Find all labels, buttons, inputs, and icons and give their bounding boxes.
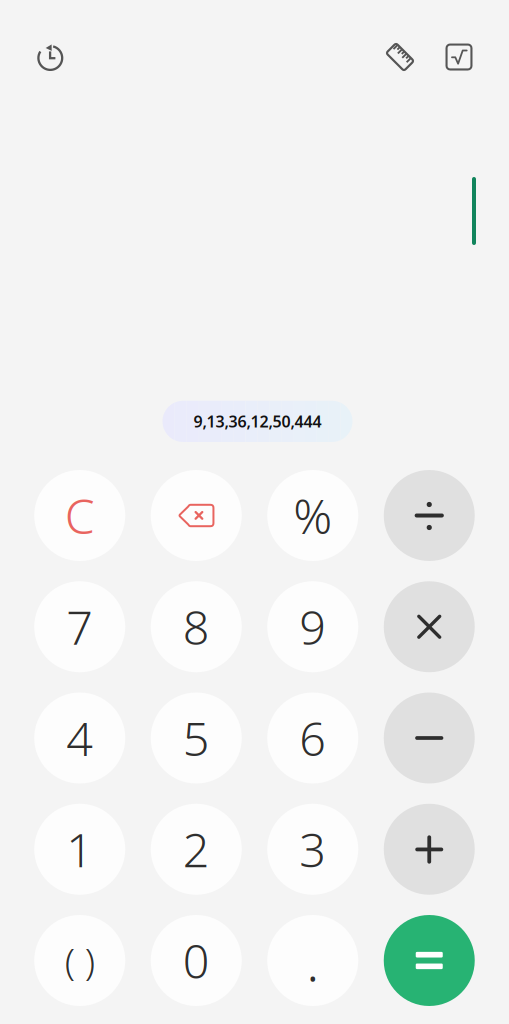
button[interactable]: . bbox=[267, 915, 358, 1006]
button[interactable]: 5 bbox=[151, 692, 242, 783]
button[interactable]: 7 bbox=[34, 581, 125, 672]
staticText: 9 bbox=[299, 596, 326, 658]
staticText: 6 bbox=[299, 707, 326, 769]
button[interactable]: 4 bbox=[34, 692, 125, 783]
button[interactable]: Equals bbox=[384, 915, 475, 1006]
button[interactable]: History bbox=[27, 34, 73, 80]
staticText: C bbox=[65, 484, 95, 547]
staticText: 8 bbox=[183, 596, 210, 658]
button[interactable]: Unit converter bbox=[377, 34, 423, 80]
button[interactable]: 9 bbox=[267, 581, 358, 672]
staticText: 1 bbox=[66, 818, 93, 880]
staticText: 9,13,36,12,50,444 bbox=[193, 411, 321, 432]
staticText: ( ) bbox=[65, 936, 95, 985]
button[interactable]: Divide bbox=[384, 470, 475, 561]
button[interactable]: C bbox=[34, 470, 125, 561]
button[interactable]: 8 bbox=[151, 581, 242, 672]
button[interactable]: Expression bbox=[0, 177, 509, 245]
button[interactable]: 6 bbox=[267, 692, 358, 783]
staticText: 3 bbox=[299, 818, 326, 880]
button[interactable]: ( ) bbox=[34, 915, 125, 1006]
staticText: 7 bbox=[66, 596, 93, 658]
staticText: 5 bbox=[183, 707, 210, 769]
button[interactable]: 2 bbox=[151, 804, 242, 895]
button[interactable]: Subtract bbox=[384, 692, 475, 783]
staticText: 4 bbox=[66, 707, 93, 769]
button[interactable]: Add bbox=[384, 804, 475, 895]
staticText: 0 bbox=[183, 929, 210, 991]
button[interactable]: 9,13,36,12,50,444 bbox=[162, 401, 352, 442]
staticText: % bbox=[293, 484, 332, 547]
staticText: . bbox=[306, 925, 319, 996]
button[interactable]: 1 bbox=[34, 804, 125, 895]
button[interactable]: Scientific keypad bbox=[436, 34, 482, 80]
button[interactable]: % bbox=[267, 470, 358, 561]
staticText: 2 bbox=[183, 818, 210, 880]
button[interactable]: Multiply bbox=[384, 581, 475, 672]
button[interactable]: 3 bbox=[267, 804, 358, 895]
button[interactable]: Backspace bbox=[151, 470, 242, 561]
button[interactable]: 0 bbox=[151, 915, 242, 1006]
